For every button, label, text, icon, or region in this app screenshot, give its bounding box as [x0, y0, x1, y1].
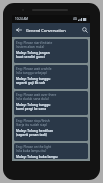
- staticText: Malay: Tolong jangan buat sendiri gunci: [16, 51, 50, 59]
- staticText: Malay: Tolong tunggu seperti gaji lik sa…: [16, 77, 51, 85]
- staticText: General Conversation: [26, 28, 79, 33]
- button[interactable]: Eng: Please on the light (sila buka lamp…: [14, 143, 88, 159]
- button[interactable]: Back: [12, 23, 26, 37]
- staticText: Malay: Tolong hentikan (seperti pesan ta…: [16, 129, 54, 137]
- button[interactable]: Eng: Please wait over there (sila duduk …: [14, 91, 88, 115]
- staticText: Malay: Tolong tunggu kami pergi ke sana: [16, 103, 51, 111]
- staticText: Eng: Please stop/finish (kerja itu sudah…: [16, 119, 50, 127]
- staticText: Malay: Tolong buka lampu: [16, 155, 58, 159]
- staticText: Eng: Please start/initiate (sistem akan …: [16, 41, 53, 49]
- button[interactable]: Eng: Please wait a while (sila tunggu se…: [14, 65, 88, 89]
- staticText: 10:24 AM: [15, 17, 29, 21]
- button[interactable]: Eng: Please stop/finish (kerja itu sudah…: [14, 117, 88, 141]
- staticText: Eng: Please wait over there (sila duduk …: [16, 93, 57, 101]
- staticText: Eng: Please on the light (sila buka lamp…: [16, 145, 52, 153]
- staticText: Eng: Please wait a while (sila tunggu se…: [16, 67, 52, 75]
- button[interactable]: Search: [79, 23, 90, 37]
- button[interactable]: Eng: Please start/initiate (sistem akan …: [14, 39, 88, 63]
- staticText: 4G: [73, 17, 77, 21]
